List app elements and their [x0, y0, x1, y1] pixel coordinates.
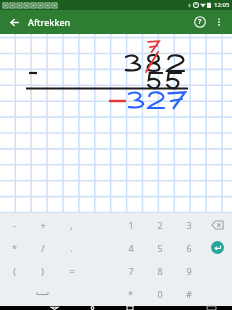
staticText: 8 — [157, 265, 163, 277]
button[interactable]: 3 — [174, 213, 203, 236]
button[interactable]: Back — [4, 12, 24, 32]
staticText: 12:05 — [214, 1, 230, 9]
button[interactable]: 1 — [116, 213, 145, 236]
button[interactable]: , — [57, 213, 86, 236]
staticText: ? — [198, 17, 202, 27]
button[interactable]: Keyboard — [197, 306, 225, 310]
button[interactable]: Help — [190, 12, 210, 32]
button[interactable]: More options — [210, 13, 228, 31]
staticText: 1 — [128, 219, 134, 231]
staticText: 9 — [186, 265, 192, 277]
staticText: + — [40, 219, 46, 231]
staticText: Aftrekken — [28, 16, 71, 28]
button[interactable]: 9 — [174, 259, 203, 282]
button[interactable]: * — [0, 236, 28, 259]
button[interactable]: / — [28, 236, 57, 259]
staticText: 5 — [157, 242, 163, 254]
staticText: 7 — [128, 265, 134, 277]
staticText: , — [70, 219, 73, 231]
button[interactable]: ( — [0, 259, 28, 282]
button[interactable]: Back — [35, 306, 73, 310]
button[interactable]: 4 — [116, 236, 145, 259]
staticText: * — [128, 288, 133, 300]
staticText: - — [13, 219, 16, 231]
button[interactable]: Recent apps — [111, 306, 149, 310]
button[interactable]: * — [116, 282, 145, 306]
button[interactable]: Backspace — [203, 213, 232, 236]
button[interactable]: - — [0, 213, 28, 236]
button[interactable]: + — [28, 213, 57, 236]
button[interactable]: Space — [28, 282, 57, 306]
button[interactable]: Enter — [203, 236, 232, 259]
button[interactable]: Home — [73, 306, 111, 310]
staticText: 2 — [157, 219, 163, 231]
staticText: # — [186, 288, 192, 300]
button[interactable]: 8 — [145, 259, 174, 282]
button[interactable]: ) — [28, 259, 57, 282]
button[interactable]: = — [57, 259, 86, 282]
button[interactable]: 0 — [145, 282, 174, 306]
staticText: 3 — [186, 219, 192, 231]
staticText: = — [69, 265, 75, 277]
staticText: . — [70, 242, 73, 254]
staticText: 4 — [128, 242, 134, 254]
staticText: ( — [13, 265, 16, 277]
staticText: 6 — [186, 242, 192, 254]
button[interactable]: 5 — [145, 236, 174, 259]
button[interactable]: # — [174, 282, 203, 306]
button[interactable]: 2 — [145, 213, 174, 236]
staticText: * — [12, 242, 17, 254]
staticText: ) — [41, 265, 44, 277]
button[interactable]: 7 — [116, 259, 145, 282]
staticText: / — [41, 242, 45, 254]
button[interactable]: 6 — [174, 236, 203, 259]
staticText: 0 — [157, 288, 163, 300]
